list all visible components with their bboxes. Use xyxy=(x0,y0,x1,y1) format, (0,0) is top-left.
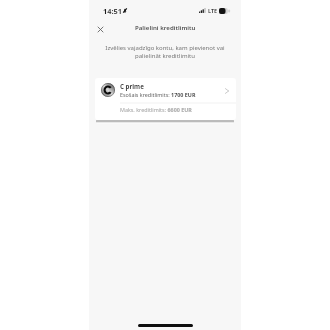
staticText: 14:51 xyxy=(103,6,122,16)
button[interactable]: Close xyxy=(92,21,108,37)
staticText: LTE xyxy=(208,7,218,14)
staticText: C prime xyxy=(120,82,144,90)
staticText: Izvēlies vajadzīgo kontu, kam pievienot … xyxy=(104,44,226,60)
staticText: Palielini kreditlimitu xyxy=(135,23,196,31)
staticText: Maks. kreditlimits: 6600 EUR xyxy=(120,106,192,113)
button[interactable]: C prime xyxy=(95,78,236,120)
staticText: Esošais kreditlimits: 1700 EUR xyxy=(120,91,196,98)
